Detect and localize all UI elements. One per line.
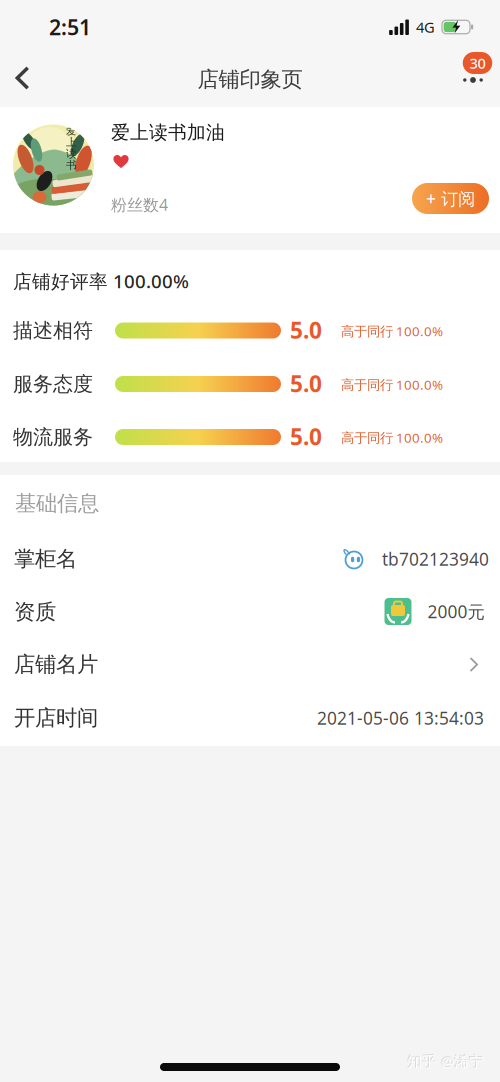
staticText: 店铺印象页 bbox=[197, 66, 302, 93]
staticText: 30 bbox=[469, 53, 485, 73]
staticText: 读 bbox=[66, 147, 77, 160]
staticText: 店铺名片 bbox=[14, 651, 98, 678]
staticText: 5.0 bbox=[290, 315, 322, 345]
staticText: 知乎 @浠宁 bbox=[407, 1052, 484, 1071]
staticText: 书 bbox=[66, 159, 77, 172]
staticText: 2000元 bbox=[427, 600, 484, 623]
staticText: 爱 bbox=[66, 124, 77, 137]
staticText: tb702123940 bbox=[382, 547, 489, 570]
staticText: 知乎 @浠宁 bbox=[406, 1051, 483, 1070]
button[interactable]: Back bbox=[4, 56, 40, 100]
staticText: 物流服务 bbox=[13, 425, 93, 449]
button[interactable]: + 订阅 bbox=[412, 183, 489, 214]
button[interactable]: More bbox=[450, 57, 496, 103]
staticText: 5.0 bbox=[290, 368, 322, 398]
staticText: 资质 bbox=[14, 599, 56, 625]
staticText: 高于同行 100.0% bbox=[341, 376, 443, 393]
staticText: 粉丝数4 bbox=[111, 194, 168, 215]
staticText: 高于同行 100.0% bbox=[341, 429, 443, 446]
staticText: 2021-05-06 13:54:03 bbox=[317, 706, 484, 729]
staticText: 4G bbox=[416, 17, 435, 37]
staticText: 描述相符 bbox=[13, 318, 93, 343]
staticText: 爱上读书加油 bbox=[111, 121, 225, 144]
staticText: 上 bbox=[66, 136, 77, 149]
staticText: 服务态度 bbox=[13, 372, 93, 396]
staticText: 开店时间 bbox=[14, 705, 98, 731]
staticText: 5.0 bbox=[290, 421, 322, 451]
staticText: + 订阅 bbox=[426, 187, 475, 210]
staticText: 店铺好评率 100.00% bbox=[13, 269, 189, 293]
staticText: 2:51 bbox=[49, 13, 91, 41]
button[interactable]: 店铺名片 bbox=[0, 644, 500, 684]
staticText: 高于同行 100.0% bbox=[341, 322, 443, 340]
staticText: 掌柜名 bbox=[14, 546, 77, 572]
staticText: 基础信息 bbox=[15, 490, 99, 517]
